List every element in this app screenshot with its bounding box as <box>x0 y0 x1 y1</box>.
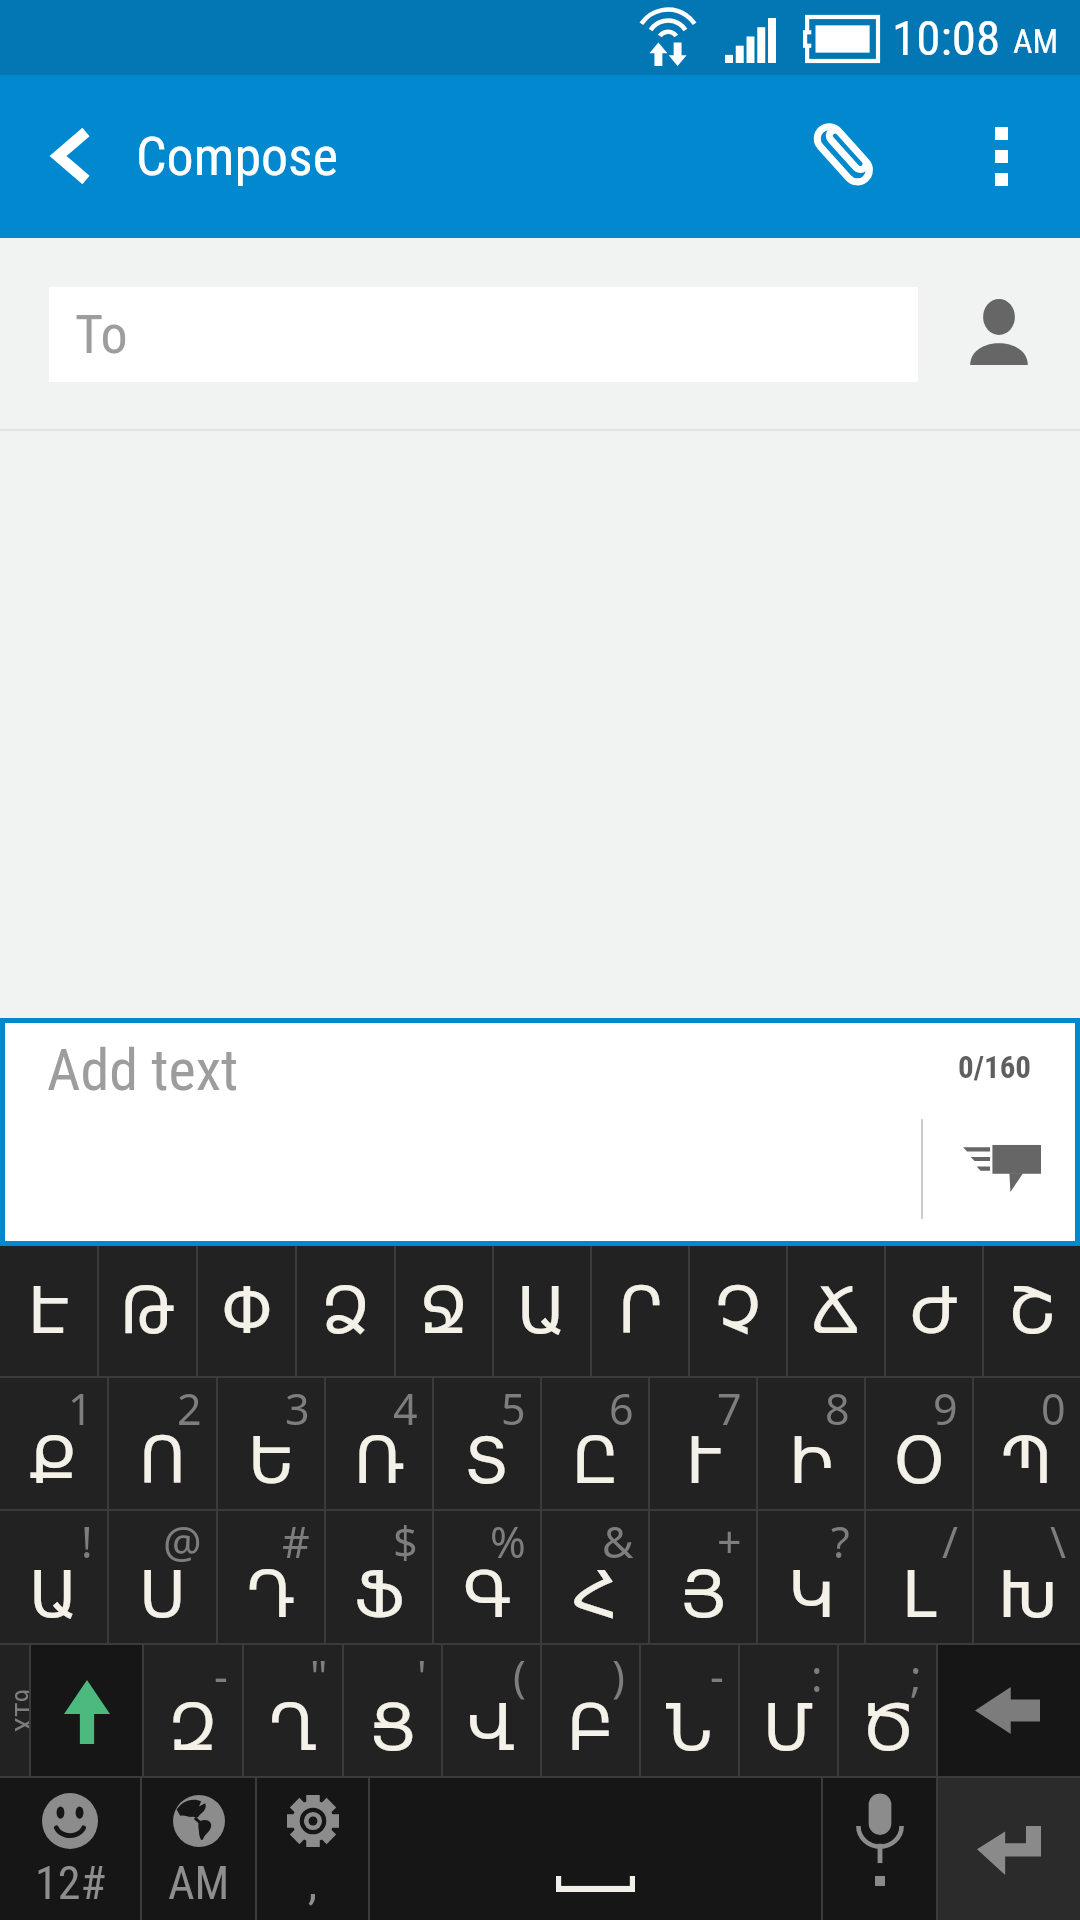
button[interactable]: Shift <box>31 1645 142 1776</box>
button[interactable]: 8 <box>758 1378 864 1509</box>
staticText: Շ <box>1008 1274 1057 1349</box>
staticText: Թ <box>120 1274 175 1349</box>
staticText: Ւ <box>686 1424 721 1499</box>
button[interactable]: ) <box>542 1645 639 1776</box>
staticText: Մ <box>763 1691 814 1766</box>
button[interactable]: Space <box>370 1778 821 1920</box>
staticText: AM <box>168 1856 230 1910</box>
button[interactable]: 5 <box>434 1378 540 1509</box>
staticText: " <box>310 1646 328 1705</box>
staticText: & <box>602 1512 634 1571</box>
button[interactable]: \ <box>974 1511 1080 1643</box>
button[interactable]: , <box>257 1778 368 1920</box>
staticText: Չ <box>715 1274 761 1349</box>
button[interactable]: # <box>218 1511 324 1643</box>
button[interactable]: $ <box>326 1511 432 1643</box>
staticText: Compose <box>136 125 339 188</box>
staticText: Ա <box>517 1274 567 1349</box>
button[interactable]: Փ <box>198 1246 295 1376</box>
button[interactable]: ' <box>344 1645 441 1776</box>
button[interactable]: ? <box>758 1511 864 1643</box>
staticText: Ֆ <box>354 1558 405 1633</box>
button[interactable]: Send <box>925 1119 1075 1219</box>
staticText: AM <box>1013 21 1059 61</box>
staticText: Ն <box>666 1691 713 1766</box>
staticText: Ձ <box>321 1274 370 1349</box>
button[interactable]: ; <box>839 1645 936 1776</box>
staticText: Ք <box>29 1424 78 1499</box>
button[interactable]: / <box>866 1511 972 1643</box>
button[interactable]: 7 <box>650 1378 756 1509</box>
button[interactable]: 9 <box>866 1378 972 1509</box>
button[interactable]: Թ <box>99 1246 196 1376</box>
staticText: Գ <box>463 1558 512 1633</box>
button[interactable]: Backspace <box>938 1645 1080 1776</box>
staticText: 1 <box>68 1379 93 1438</box>
button[interactable]: Ա <box>494 1246 590 1376</box>
staticText: Պ <box>1001 1424 1053 1499</box>
button[interactable]: : <box>740 1645 837 1776</box>
staticText: Վ <box>467 1691 516 1766</box>
staticText: Ո <box>139 1424 186 1499</box>
button[interactable]: Ճ <box>788 1246 884 1376</box>
button[interactable]: More options <box>958 75 1080 238</box>
staticText: Խ <box>998 1558 1057 1633</box>
staticText: Օ <box>894 1424 945 1499</box>
button[interactable]: ( <box>443 1645 540 1776</box>
button[interactable]: To <box>49 287 918 382</box>
button[interactable]: & <box>542 1511 648 1643</box>
staticText: Է <box>28 1274 69 1349</box>
button[interactable]: Ր <box>592 1246 688 1376</box>
button[interactable]: 0 <box>974 1378 1080 1509</box>
button[interactable]: - <box>641 1645 738 1776</box>
button[interactable]: Շ <box>984 1246 1080 1376</box>
button[interactable]: Է <box>0 1246 97 1376</box>
button[interactable]: ! <box>0 1511 107 1643</box>
staticText: 9 <box>933 1379 958 1438</box>
staticText: ( <box>513 1646 526 1705</box>
button[interactable]: @ <box>109 1511 216 1643</box>
staticText: - <box>214 1646 228 1705</box>
staticText: Ը <box>572 1424 619 1499</box>
staticText: Ղ <box>269 1691 318 1766</box>
staticText: ) <box>612 1646 625 1705</box>
button[interactable]: + <box>650 1511 756 1643</box>
button[interactable]: Չ <box>690 1246 786 1376</box>
button[interactable]: Ժ <box>886 1246 982 1376</box>
staticText: Ե <box>248 1424 295 1499</box>
button[interactable]: 2 <box>109 1378 216 1509</box>
staticText: $ <box>393 1512 418 1571</box>
staticText: Ճ <box>811 1274 861 1349</box>
button[interactable]: Attach <box>808 75 958 238</box>
button[interactable]: AM <box>142 1778 255 1920</box>
staticText: 7 <box>717 1379 742 1438</box>
button[interactable]: " <box>244 1645 342 1776</box>
button[interactable]: - <box>144 1645 242 1776</box>
button[interactable]: Ջ <box>396 1246 492 1376</box>
button[interactable]: 12# <box>0 1778 140 1920</box>
staticText: XT9 <box>0 1688 31 1732</box>
button[interactable]: Ձ <box>297 1246 394 1376</box>
button[interactable]: 6 <box>542 1378 648 1509</box>
staticText: : <box>811 1646 823 1705</box>
staticText: Ս <box>139 1558 186 1633</box>
staticText: To <box>75 303 128 366</box>
staticText: Բ <box>567 1691 614 1766</box>
button[interactable]: Navigate up <box>0 75 136 238</box>
staticText: Դ <box>247 1558 296 1633</box>
button[interactable]: 1 <box>0 1378 107 1509</box>
staticText: 5 <box>501 1379 526 1438</box>
button[interactable]: 3 <box>218 1378 324 1509</box>
staticText: Կ <box>788 1558 835 1633</box>
button[interactable]: 4 <box>326 1378 432 1509</box>
button[interactable]: % <box>434 1511 540 1643</box>
button[interactable]: Choose contact <box>918 284 1080 379</box>
staticText: Տ <box>464 1424 510 1499</box>
staticText: Ա <box>29 1558 79 1633</box>
staticText: 0 <box>1041 1379 1066 1438</box>
button[interactable]: Voice input <box>823 1778 936 1920</box>
staticText: 8 <box>825 1379 850 1438</box>
staticText: @ <box>163 1512 202 1571</box>
button[interactable]: Enter <box>938 1778 1080 1920</box>
button[interactable]: Add text <box>5 1023 1075 1241</box>
